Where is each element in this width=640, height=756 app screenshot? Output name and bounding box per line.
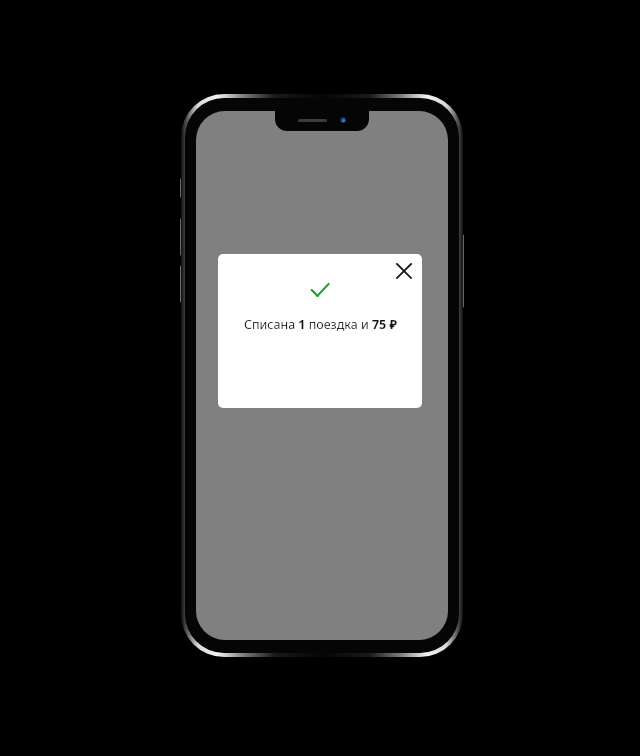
staticText: Списана 1 поездка и 75 ₽	[244, 316, 397, 333]
button[interactable]: Закрыть	[218, 254, 422, 408]
button[interactable]: Закрыть	[389, 256, 419, 286]
